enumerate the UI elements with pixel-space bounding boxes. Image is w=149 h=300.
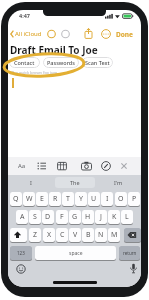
button[interactable]: Aa — [16, 160, 28, 172]
button[interactable]: B — [82, 228, 94, 242]
button[interactable]: R — [49, 192, 61, 206]
button[interactable]: 123 — [10, 246, 32, 260]
staticText: F — [60, 212, 64, 222]
button[interactable]: Scan Text — [82, 57, 113, 68]
button[interactable] — [120, 162, 128, 170]
staticText: B — [86, 230, 91, 240]
button[interactable]: return — [119, 246, 140, 260]
button[interactable]: H — [82, 210, 94, 224]
staticText: The — [70, 179, 80, 186]
staticText: space — [69, 250, 83, 257]
button[interactable]: space — [35, 246, 116, 260]
button[interactable]: W — [23, 192, 35, 206]
staticText: W — [26, 194, 33, 204]
staticText: 123 — [17, 250, 25, 256]
button[interactable]: L — [121, 210, 133, 224]
staticText: I — [106, 194, 109, 204]
button[interactable]: All iCloud — [15, 29, 45, 39]
button[interactable]: K — [108, 210, 120, 224]
staticText: I'm — [114, 179, 123, 186]
button[interactable]: N — [95, 228, 107, 242]
button[interactable] — [129, 263, 138, 275]
staticText: P — [132, 194, 137, 204]
staticText: N — [98, 230, 104, 240]
staticText: Aa — [18, 162, 26, 170]
staticText: Passwords — [47, 59, 75, 66]
button[interactable] — [16, 264, 26, 274]
staticText: Y — [79, 194, 83, 204]
button[interactable]: I — [18, 177, 43, 188]
button[interactable]: J — [95, 210, 107, 224]
staticText: 4:47 — [19, 12, 30, 19]
button[interactable] — [101, 161, 111, 171]
staticText: All iCloud — [15, 30, 42, 38]
staticText: R — [53, 194, 58, 204]
button[interactable] — [84, 28, 93, 39]
staticText: Done — [116, 30, 133, 39]
button[interactable] — [101, 29, 111, 39]
staticText: The quick brown fox jum — [11, 70, 58, 75]
button[interactable]: Y — [75, 192, 87, 206]
staticText: V — [73, 230, 78, 240]
staticText: return — [123, 250, 137, 256]
button[interactable]: A — [16, 210, 28, 224]
staticText: J — [100, 212, 102, 222]
staticText: Z — [33, 230, 38, 240]
staticText: U — [91, 194, 97, 204]
staticText: T — [66, 194, 70, 204]
button[interactable]: I'm — [106, 177, 131, 188]
button[interactable] — [37, 161, 47, 171]
staticText: G — [72, 212, 78, 222]
button[interactable]: Q — [10, 192, 22, 206]
button[interactable]: G — [69, 210, 81, 224]
staticText: L — [125, 212, 129, 222]
staticText: D — [45, 212, 51, 222]
staticText: C — [60, 230, 65, 240]
button[interactable]: M — [108, 228, 120, 242]
staticText: E — [40, 194, 44, 204]
staticText: Contact — [14, 59, 35, 66]
button[interactable]: X — [43, 228, 55, 242]
button[interactable] — [57, 161, 67, 171]
staticText: M — [111, 230, 118, 240]
staticText: I — [30, 179, 32, 186]
staticText: O — [118, 194, 124, 204]
button[interactable] — [81, 161, 92, 171]
button[interactable]: S — [29, 210, 41, 224]
button[interactable]: I — [101, 192, 113, 206]
button[interactable]: E — [36, 192, 48, 206]
button[interactable]: D — [42, 210, 54, 224]
staticText: K — [112, 212, 117, 222]
staticText: H — [85, 212, 91, 222]
button[interactable]: O — [115, 192, 127, 206]
button[interactable] — [124, 228, 141, 242]
button[interactable] — [10, 228, 27, 242]
staticText: X — [47, 230, 52, 240]
button[interactable]: Passwords — [43, 57, 79, 68]
staticText: S — [33, 212, 37, 222]
button[interactable]: V — [69, 228, 81, 242]
button[interactable]: C — [56, 228, 68, 242]
button[interactable]: Done — [112, 29, 136, 39]
button[interactable]: Contact — [9, 57, 40, 68]
button[interactable]: The — [55, 177, 95, 188]
staticText: Draft Email To Joe — [10, 43, 98, 57]
button[interactable]: Z — [29, 228, 41, 242]
staticText: A — [20, 212, 25, 222]
button[interactable]: U — [88, 192, 100, 206]
staticText: Scan Text — [85, 59, 110, 66]
button[interactable]: P — [128, 192, 140, 206]
button[interactable]: T — [62, 192, 74, 206]
staticText: Q — [13, 194, 19, 204]
button[interactable]: F — [56, 210, 68, 224]
